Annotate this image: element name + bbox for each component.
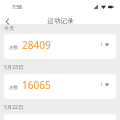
staticText: 今天 [4,25,15,32]
button[interactable]: 步数 [4,74,116,99]
staticText: 5月23日 [4,63,24,70]
staticText: 运动记录 [47,17,74,25]
staticText: 5月22日 [4,103,24,110]
button[interactable]: Favorite [104,82,109,87]
button[interactable]: Favorite [104,42,109,47]
staticText: 7:58 [12,4,22,11]
button[interactable]: Back [1,15,13,27]
staticText: 步数 [9,85,19,91]
staticText: 28409 [22,38,51,52]
staticText: 16065 [22,78,51,92]
button[interactable]: 步数 [4,34,116,59]
staticText: 步数 [9,45,19,51]
